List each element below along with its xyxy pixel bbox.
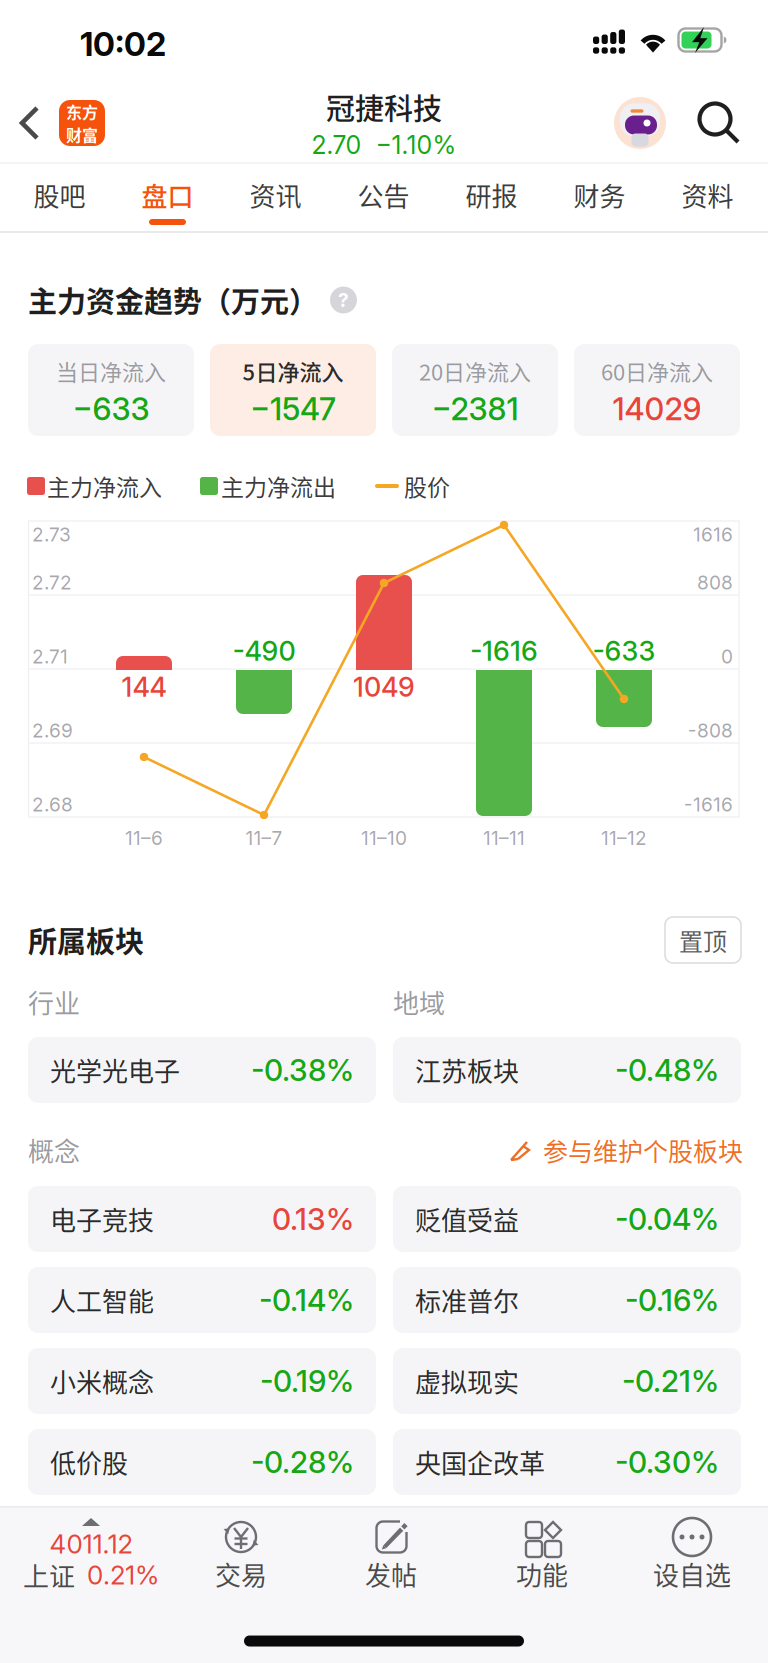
staticText: 1049 (353, 671, 415, 703)
staticText: −2381 (431, 390, 518, 428)
staticText: 置顶 (679, 923, 727, 957)
staticText: 2.68 (32, 793, 73, 816)
staticText: 盘口 (141, 176, 193, 214)
staticText: 2.71 (32, 645, 68, 668)
button[interactable]: 功能 (472, 1506, 612, 1602)
button[interactable]: 研报 (437, 164, 545, 230)
button[interactable]: 央国企改革 (393, 1429, 741, 1495)
button[interactable]: 虚拟现实 (393, 1348, 741, 1414)
staticText: 主力净流入 (47, 469, 162, 503)
button[interactable]: 资讯 (221, 164, 329, 230)
staticText: -0.30% (615, 1444, 719, 1480)
staticText: ? (338, 288, 349, 311)
staticText: 江苏板块 (415, 1051, 519, 1089)
staticText: 11–6 (125, 826, 163, 849)
button[interactable]: 当日净流入 (28, 344, 194, 436)
button[interactable]: 5日净流入 (210, 344, 376, 436)
staticText: 11–12 (601, 826, 647, 849)
staticText: 公告 (357, 176, 409, 214)
staticText: -808 (688, 719, 733, 742)
button[interactable]: 60日净流入 (574, 344, 740, 436)
staticText: 所属板块 (28, 919, 144, 961)
button[interactable]: 江苏板块 (393, 1037, 741, 1103)
staticText: -0.48% (615, 1052, 719, 1088)
staticText: 上证 (23, 1556, 75, 1594)
staticText: -1616 (470, 635, 538, 667)
button[interactable]: 20日净流入 (392, 344, 558, 436)
staticText: 20日净流入 (419, 355, 531, 387)
staticText: 地域 (393, 983, 445, 1021)
staticText: 资讯 (249, 176, 301, 214)
staticText: 主力净流出 (221, 469, 336, 503)
button[interactable]: Search (684, 88, 754, 158)
staticText: 2.69 (32, 719, 73, 742)
button[interactable]: Back (9, 95, 65, 151)
button[interactable]: 4011.12 (0, 1506, 182, 1602)
staticText: 行业 (28, 983, 80, 1021)
staticText: 10:02 (80, 24, 166, 64)
button[interactable]: 交易 (171, 1506, 311, 1602)
staticText: 主力资金趋势（万元） (28, 279, 318, 321)
button[interactable]: 设自选 (622, 1506, 762, 1602)
staticText: -0.16% (625, 1282, 719, 1318)
button[interactable]: East Money logo (59, 100, 105, 146)
staticText: 发帖 (365, 1555, 417, 1593)
staticText: 0.21% (87, 1559, 159, 1591)
staticText: 人工智能 (50, 1281, 154, 1319)
button[interactable]: 人工智能 (28, 1267, 376, 1333)
staticText: −1.10% (375, 130, 456, 160)
button[interactable]: 电子竞技 (28, 1186, 376, 1252)
button[interactable]: 股吧 (5, 164, 113, 230)
button[interactable]: 盘口 (113, 164, 221, 230)
staticText: 11–11 (483, 826, 525, 849)
staticText: 央国企改革 (415, 1443, 545, 1481)
button[interactable]: 资料 (653, 164, 761, 230)
staticText: 财富 (66, 123, 98, 146)
staticText: 研报 (465, 176, 517, 214)
staticText: 小米概念 (50, 1362, 154, 1400)
staticText: 4011.12 (49, 1528, 132, 1560)
staticText: 5日净流入 (242, 355, 343, 387)
staticText: -0.38% (251, 1052, 354, 1088)
staticText: 股价 (404, 469, 450, 503)
staticText: 资料 (681, 176, 733, 214)
staticText: 11–7 (245, 826, 282, 849)
staticText: -633 (592, 635, 655, 667)
button[interactable]: 发帖 (321, 1506, 461, 1602)
button[interactable]: AI assistant (613, 96, 667, 150)
staticText: 功能 (516, 1555, 568, 1593)
button[interactable]: 参与维护个股板块 (508, 1130, 743, 1170)
button[interactable]: 置顶 (665, 917, 741, 963)
staticText: -0.28% (251, 1444, 354, 1480)
button[interactable]: 标准普尔 (393, 1267, 741, 1333)
staticText: 2.73 (32, 523, 71, 546)
staticText: -0.04% (615, 1201, 719, 1237)
staticText: 财务 (573, 176, 625, 214)
staticText: 光学光电子 (50, 1051, 180, 1089)
staticText: 0.13% (272, 1201, 354, 1237)
staticText: 东方 (66, 100, 98, 123)
staticText: 股吧 (33, 176, 85, 214)
staticText: 标准普尔 (415, 1281, 519, 1319)
staticText: 电子竞技 (50, 1200, 154, 1238)
staticText: 低价股 (50, 1443, 128, 1481)
button[interactable]: 公告 (329, 164, 437, 230)
staticText: -0.21% (622, 1363, 719, 1399)
button[interactable]: 财务 (545, 164, 653, 230)
staticText: 60日净流入 (601, 355, 713, 387)
button[interactable]: 光学光电子 (28, 1037, 376, 1103)
staticText: 参与维护个股板块 (543, 1132, 743, 1168)
staticText: 144 (121, 671, 166, 703)
staticText: 贬值受益 (415, 1200, 519, 1238)
staticText: 概念 (28, 1131, 80, 1169)
staticText: 1616 (693, 523, 733, 546)
staticText: 14029 (612, 390, 701, 428)
staticText: −633 (72, 390, 149, 428)
staticText: -1616 (684, 793, 733, 816)
staticText: 11–10 (361, 826, 407, 849)
button[interactable]: 贬值受益 (393, 1186, 741, 1252)
staticText: 808 (697, 571, 733, 594)
staticText: 2.70 (311, 130, 361, 160)
button[interactable]: 小米概念 (28, 1348, 376, 1414)
button[interactable]: 低价股 (28, 1429, 376, 1495)
